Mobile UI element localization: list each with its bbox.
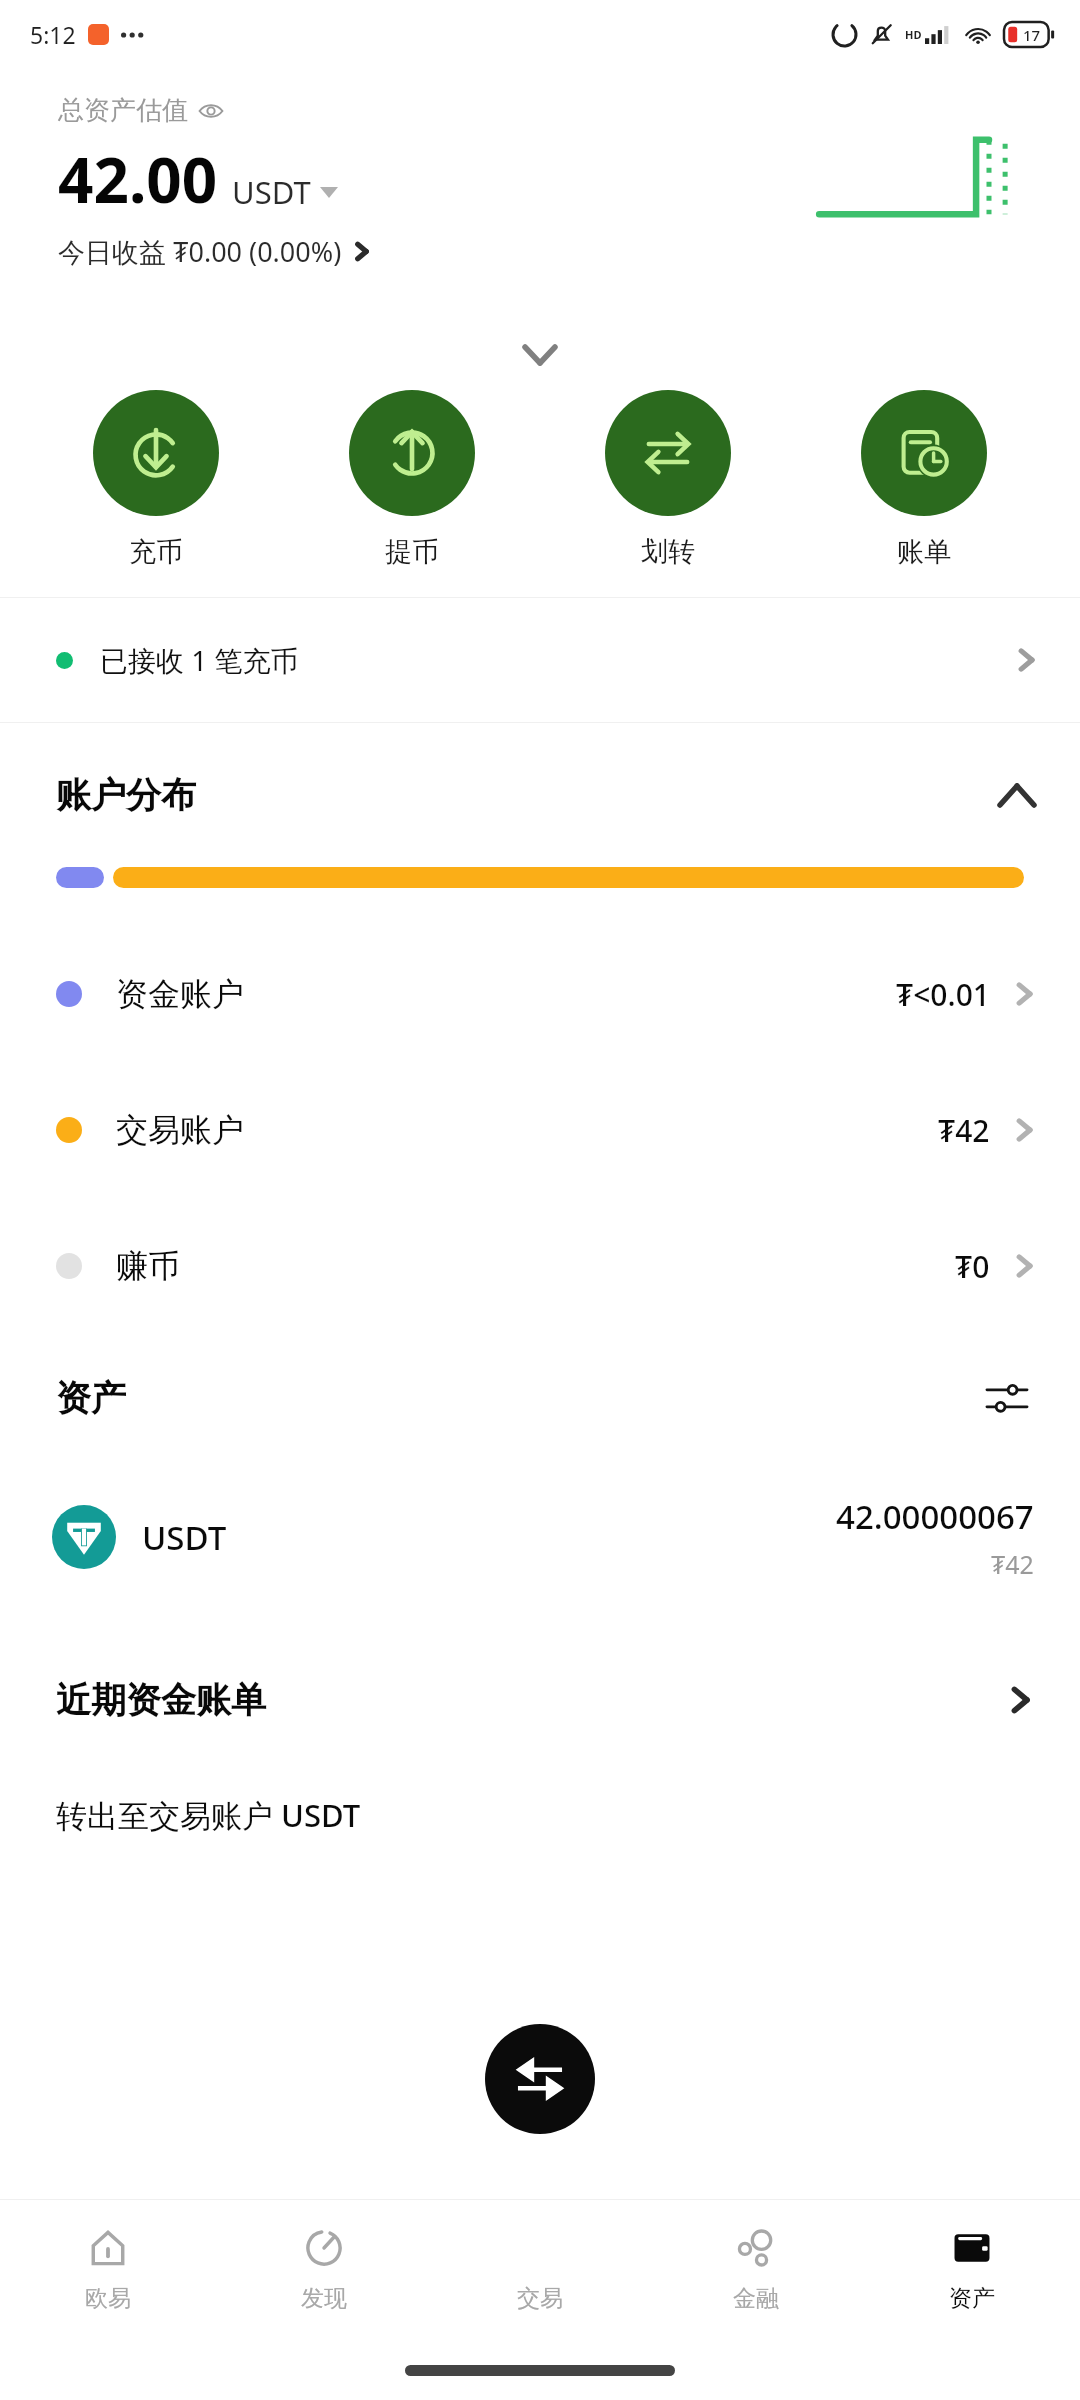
staticText: HD [905, 27, 922, 42]
button[interactable]: 欧易 [0, 2200, 216, 2340]
staticText: 17 [1023, 25, 1041, 45]
button[interactable]: 账单 [796, 386, 1052, 573]
button[interactable]: 隐藏资产 [198, 98, 224, 124]
staticText: ₮0 [955, 1246, 990, 1287]
button[interactable]: 今日收益 ₮0.00 (0.00%) [58, 233, 371, 270]
staticText: 42.00 [58, 137, 218, 221]
button[interactable]: 交易 [485, 2024, 595, 2134]
button[interactable]: 充币 [28, 386, 284, 573]
button[interactable]: 资金账户 [0, 926, 1080, 1062]
staticText: 划转 [641, 535, 695, 569]
staticText: 充币 [129, 535, 183, 569]
button[interactable]: 发现 [216, 2200, 432, 2340]
staticText: 转出至交易账户 USDT [56, 1794, 361, 1836]
staticText: 5:12 [30, 19, 76, 50]
staticText: USDT [232, 171, 311, 213]
button[interactable]: 账户分布 [0, 723, 1080, 867]
button[interactable]: 提币 [284, 386, 540, 573]
staticText: 已接收 1 笔充币 [100, 641, 299, 679]
staticText: 今日收益 ₮0.00 (0.00%) [58, 233, 342, 270]
staticText: 交易 [517, 2284, 563, 2313]
staticText: 资产 [56, 1376, 126, 1420]
staticText: 账户分布 [56, 773, 196, 817]
button[interactable]: 已接收 1 笔充币 [0, 598, 1080, 722]
staticText: 金融 [733, 2284, 779, 2313]
staticText: 发现 [301, 2284, 347, 2313]
button[interactable]: 划转 [540, 386, 796, 573]
staticText: ₮<0.01 [896, 974, 990, 1015]
button[interactable]: USDT [232, 171, 338, 213]
button[interactable]: 赚币 [0, 1198, 1080, 1334]
button[interactable]: 交易账户 [0, 1062, 1080, 1198]
staticText: ₮42 [938, 1110, 990, 1151]
staticText: ₮42 [991, 1547, 1034, 1581]
button[interactable]: 金融 [648, 2200, 864, 2340]
button[interactable]: 筛选 [980, 1371, 1034, 1425]
staticText: USDT [142, 1515, 227, 1560]
staticText: 42.00000067 [836, 1494, 1034, 1539]
button[interactable]: 资产 [864, 2200, 1080, 2340]
staticText: 欧易 [85, 2284, 131, 2313]
button[interactable]: 交易 [432, 2200, 648, 2340]
button[interactable]: 展开 [510, 325, 570, 385]
button[interactable]: USDT [0, 1462, 1080, 1612]
staticText: 总资产估值 [58, 94, 188, 127]
button[interactable]: 近期资金账单 [0, 1650, 1080, 1750]
staticText: 提币 [385, 535, 439, 569]
staticText: 资产 [949, 2284, 995, 2313]
staticText: 赚币 [116, 1246, 180, 1286]
staticText: 账单 [897, 535, 951, 569]
staticText: 近期资金账单 [56, 1678, 266, 1722]
staticText: 交易账户 [116, 1110, 244, 1150]
staticText: 资金账户 [116, 974, 244, 1014]
